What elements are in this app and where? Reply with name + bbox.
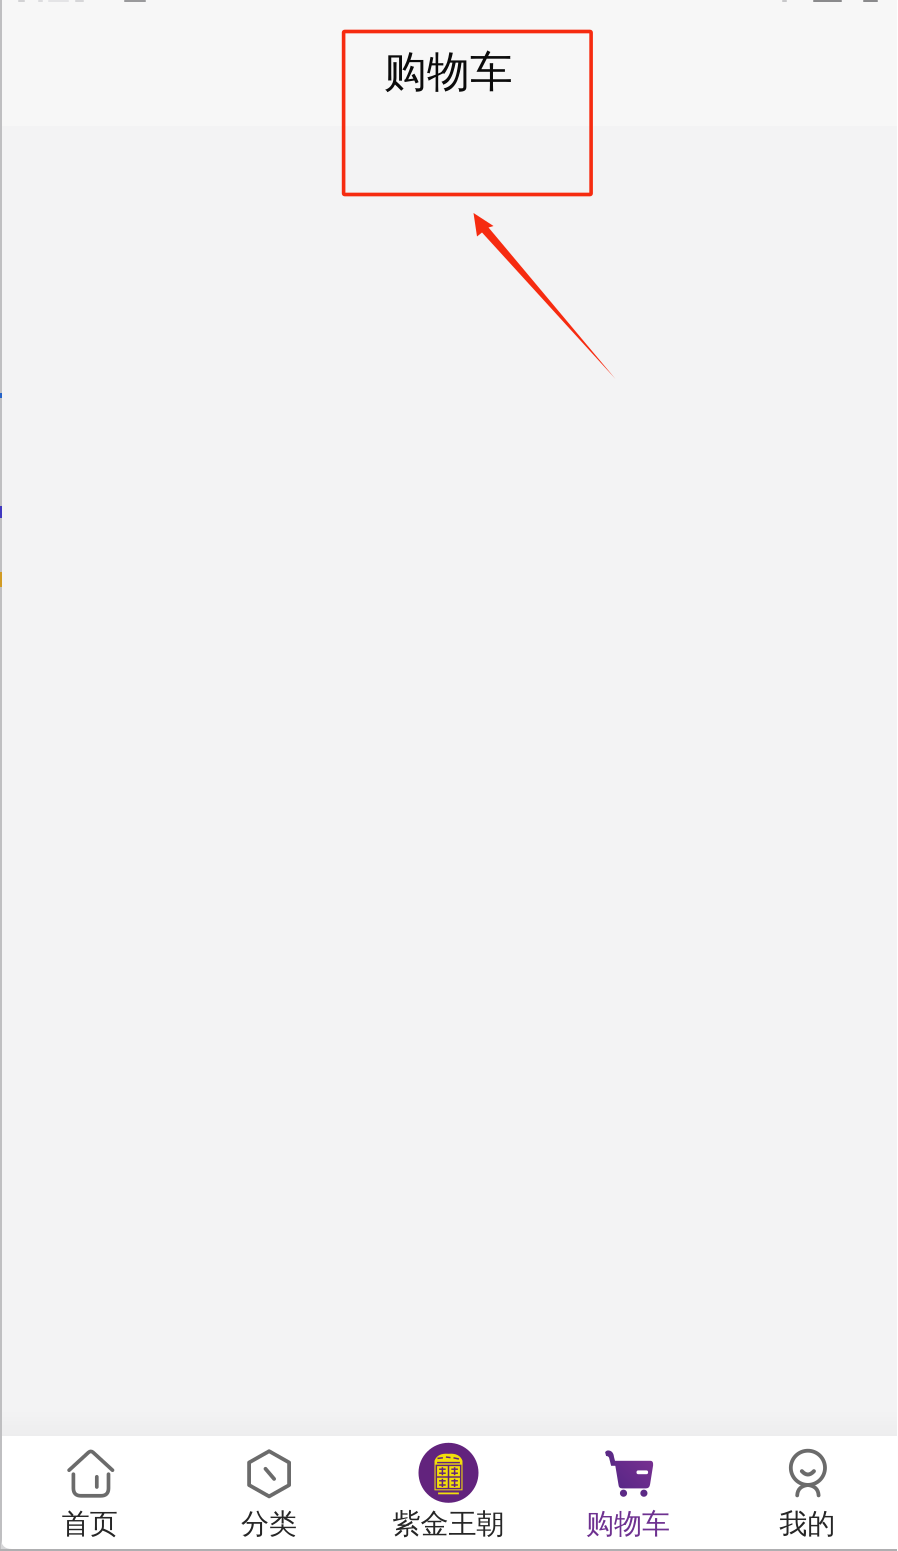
staticText: 我的 (779, 1507, 835, 1541)
staticText: 购物车 (384, 46, 513, 98)
button[interactable]: 紫金王朝 (359, 1435, 538, 1551)
staticText: 首页 (62, 1507, 118, 1541)
button[interactable]: 我的 (718, 1435, 897, 1551)
button[interactable]: 首页 (0, 1435, 179, 1551)
staticText: 紫金王朝 (392, 1507, 504, 1541)
staticText: 购物车 (586, 1507, 670, 1541)
staticText: 分类 (241, 1507, 297, 1541)
button[interactable]: 分类 (179, 1435, 359, 1551)
button[interactable]: 购物车 (538, 1435, 718, 1551)
